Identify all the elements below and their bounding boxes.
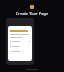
- button[interactable]: [10, 45, 30, 48]
- button[interactable]: [10, 40, 30, 43]
- button[interactable]: [10, 50, 30, 53]
- staticText: Create Your Page: [0, 11, 64, 16]
- other: Logo: [30, 5, 34, 9]
